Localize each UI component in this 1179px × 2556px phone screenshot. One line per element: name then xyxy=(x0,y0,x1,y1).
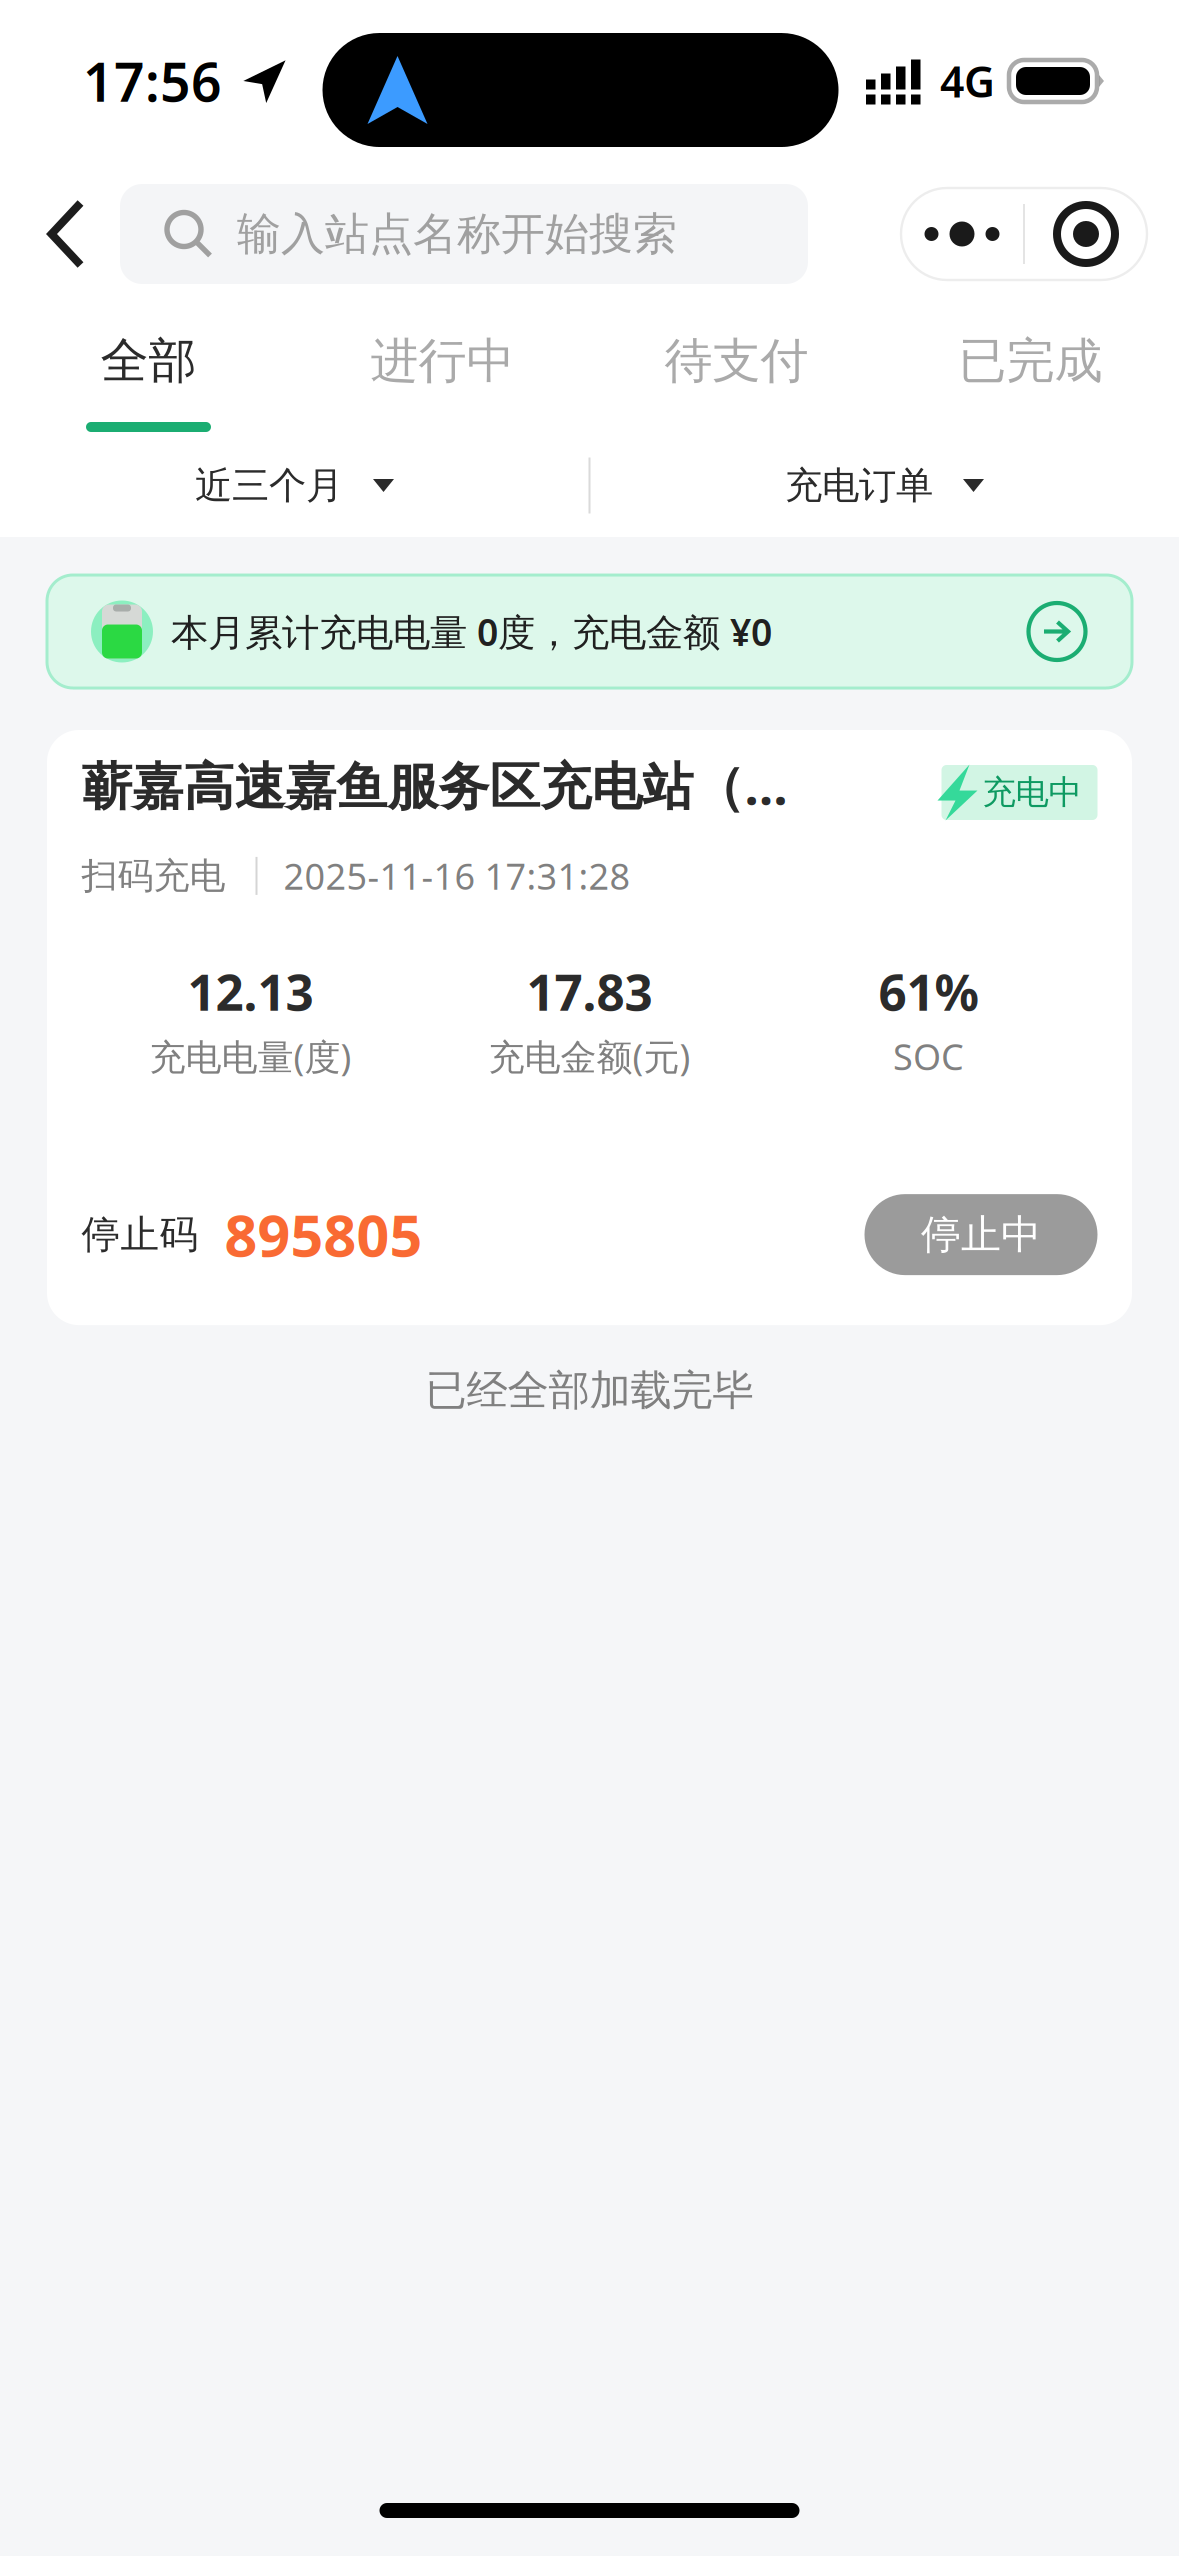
button[interactable]: 关闭 xyxy=(1025,188,1147,280)
staticText: 充电中 xyxy=(982,772,1081,813)
staticText: 充电电量(度) xyxy=(149,1032,351,1080)
staticText: 充电订单 xyxy=(785,463,933,508)
staticText: 12.13 xyxy=(187,959,313,1024)
button[interactable]: 输入站点名称开始搜索 xyxy=(120,184,808,284)
staticText: SOC xyxy=(893,1032,964,1080)
staticText: 待支付 xyxy=(664,331,808,390)
button[interactable]: 本月累计充电电量 0度，充电金额 ¥0 xyxy=(47,575,1132,688)
staticText: 895805 xyxy=(224,1197,422,1273)
button[interactable]: 充电订单 xyxy=(590,448,1178,522)
staticText: 蕲嘉高速嘉鱼服务区充电站（… xyxy=(81,751,787,819)
button[interactable]: 更多 xyxy=(901,188,1023,280)
staticText: 输入站点名称开始搜索 xyxy=(237,207,677,261)
button[interactable]: 已完成 xyxy=(883,306,1177,434)
staticText: 充电金额(元) xyxy=(488,1032,690,1080)
staticText: 已完成 xyxy=(958,331,1102,390)
staticText: 已经全部加载完毕 xyxy=(425,1365,753,1416)
button[interactable]: 待支付 xyxy=(589,306,883,434)
staticText: 全部 xyxy=(100,331,196,390)
staticText: 61% xyxy=(878,959,978,1024)
staticText: 停止中 xyxy=(921,1210,1041,1259)
staticText: 进行中 xyxy=(370,331,514,390)
staticText: 4G xyxy=(940,53,995,109)
staticText: 17.83 xyxy=(526,959,652,1024)
button[interactable]: 停止中 xyxy=(864,1194,1097,1275)
button[interactable]: 进行中 xyxy=(295,306,589,434)
staticText: 本月累计充电电量 0度，充电金额 ¥0 xyxy=(171,607,772,656)
staticText: 近三个月 xyxy=(195,463,343,508)
staticText: 2025-11-16 17:31:28 xyxy=(283,852,630,900)
staticText: 停止码 xyxy=(81,1211,198,1258)
button[interactable]: 返回 xyxy=(14,177,118,291)
button[interactable]: 近三个月 xyxy=(0,448,588,522)
staticText: 扫码充电 xyxy=(81,854,225,898)
staticText: 17:56 xyxy=(83,46,222,116)
button[interactable]: 全部 xyxy=(1,306,295,434)
